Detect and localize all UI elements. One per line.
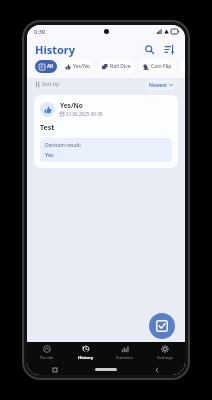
staticText: Newest: [149, 82, 167, 89]
button[interactable]: Newest: [149, 80, 173, 90]
staticText: History: [35, 42, 76, 57]
button[interactable]: New decision: [149, 313, 175, 339]
staticText: 01.06.2025 00:39: [66, 111, 103, 117]
staticText: 0:39: [34, 28, 45, 35]
staticText: Statistics: [116, 355, 134, 361]
staticText: Decide: [40, 355, 54, 361]
button[interactable]: Settings: [145, 342, 185, 364]
staticText: Decision result:: [45, 142, 81, 149]
button[interactable]: Yes/No: [65, 60, 90, 73]
staticText: Coin Flip: [151, 63, 172, 70]
staticText: Test: [40, 123, 55, 133]
staticText: Yes: [45, 151, 54, 158]
button[interactable]: Yes/No: [34, 95, 178, 168]
staticText: Yes/No: [60, 101, 83, 110]
button[interactable]: Sort: [161, 41, 177, 57]
staticText: All: [47, 63, 53, 70]
staticText: Roll Dice: [110, 63, 131, 70]
staticText: History: [78, 355, 94, 361]
button[interactable]: Roll Dice: [102, 60, 131, 73]
button[interactable]: Search: [141, 41, 157, 57]
staticText: Yes/No: [73, 63, 90, 70]
staticText: Settings: [157, 355, 173, 361]
button[interactable]: Statistics: [105, 342, 145, 364]
button[interactable]: Decide: [27, 342, 66, 364]
button[interactable]: All: [39, 60, 53, 73]
staticText: Sort by:: [42, 81, 60, 88]
button[interactable]: History: [66, 342, 105, 364]
button[interactable]: Coin Flip: [143, 60, 172, 73]
